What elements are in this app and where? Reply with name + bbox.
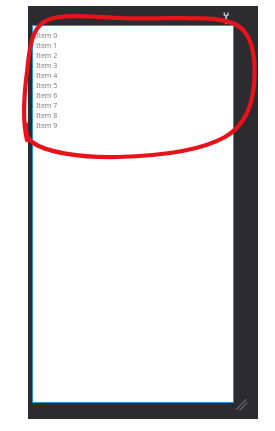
staticText: Item 2	[36, 51, 58, 61]
button[interactable]: Preview settings	[218, 10, 234, 26]
staticText: Item 4	[36, 71, 58, 81]
button[interactable]: Item 1	[33, 41, 233, 51]
button[interactable]: Resize	[234, 397, 248, 411]
staticText: Item 6	[36, 91, 58, 101]
button[interactable]: Item 8	[33, 111, 233, 121]
button[interactable]: Item 3	[33, 61, 233, 71]
staticText: Item 0	[36, 31, 58, 41]
button[interactable]: Item 0	[33, 31, 233, 41]
staticText: Item 3	[36, 61, 58, 71]
staticText: Item 9	[36, 121, 58, 131]
button[interactable]: Item 2	[33, 51, 233, 61]
staticText: Item 5	[36, 81, 58, 91]
button[interactable]: Item 9	[33, 121, 233, 131]
button[interactable]: Item 6	[33, 91, 233, 101]
staticText: Item 7	[36, 101, 58, 111]
staticText: Item 1	[36, 41, 58, 51]
button[interactable]: Item 5	[33, 81, 233, 91]
staticText: Item 8	[36, 111, 58, 121]
button[interactable]: Item 4	[33, 71, 233, 81]
button[interactable]: Item 7	[33, 101, 233, 111]
